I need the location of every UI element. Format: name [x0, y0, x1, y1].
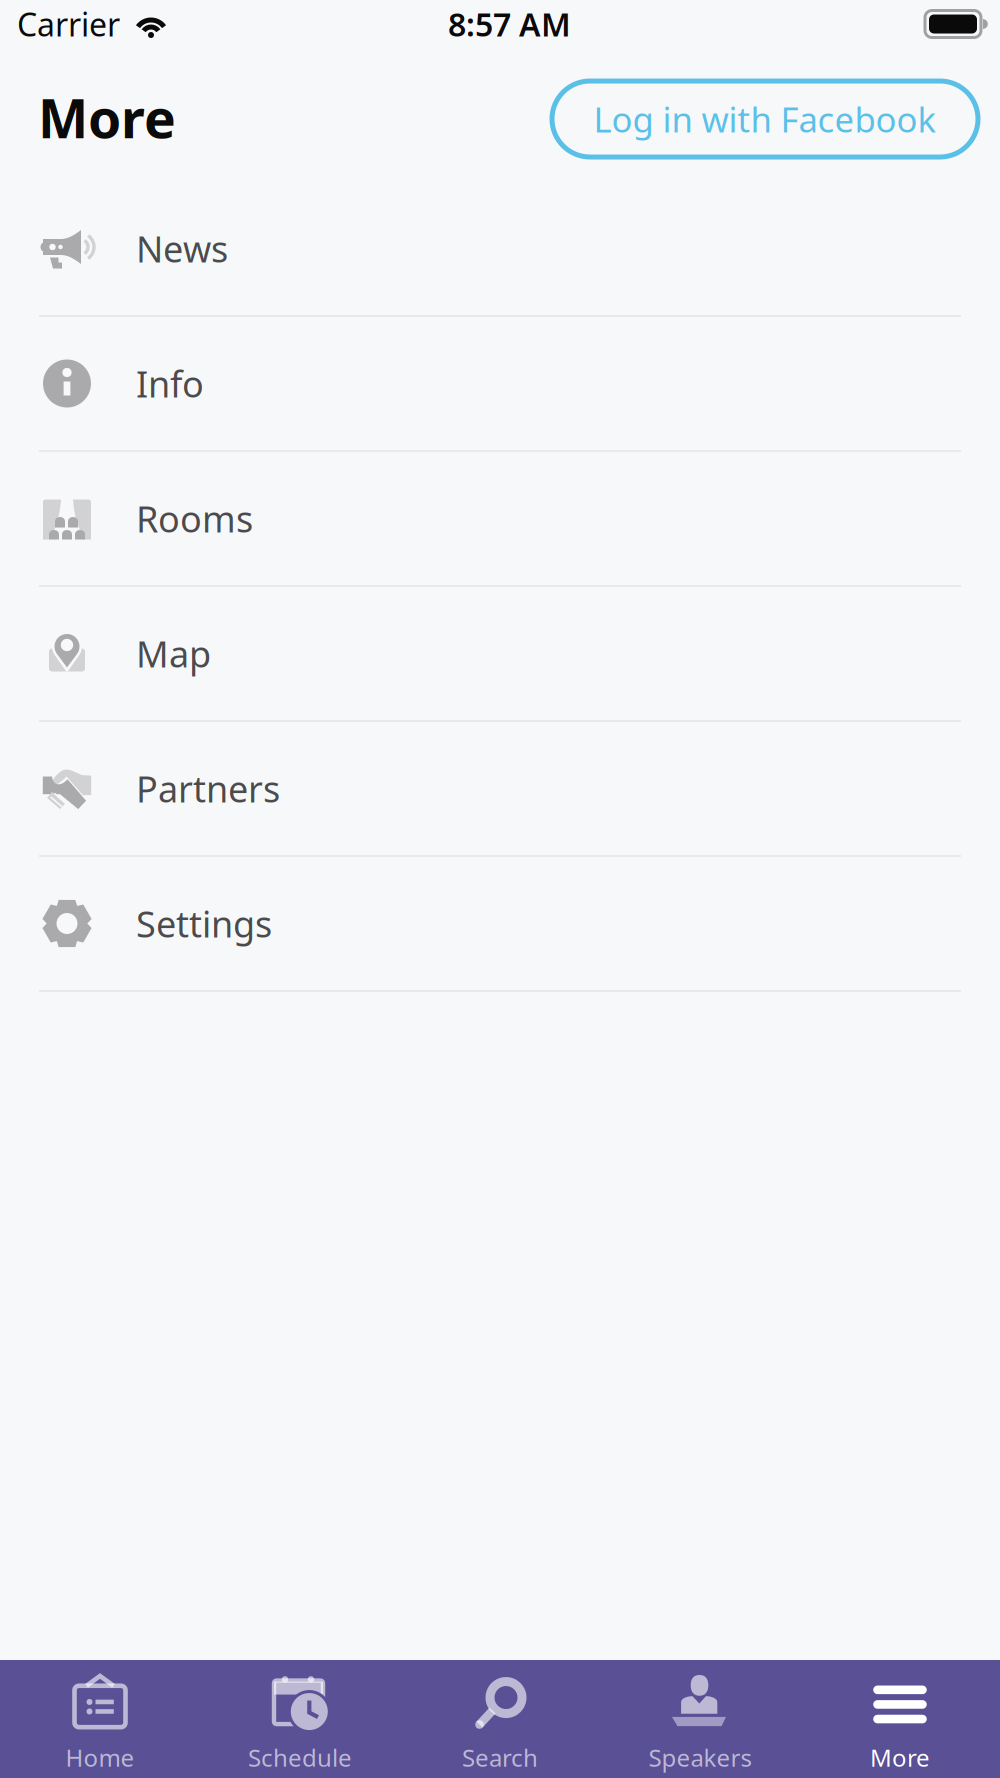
staticText: Speakers — [648, 1742, 751, 1773]
staticText: More — [870, 1742, 930, 1773]
button[interactable]: Schedule — [200, 1656, 400, 1778]
button[interactable]: Search — [400, 1656, 600, 1778]
staticText: Rooms — [136, 495, 253, 542]
staticText: Search — [462, 1742, 538, 1773]
button[interactable]: Partners — [0, 722, 1000, 857]
button[interactable]: Speakers — [600, 1656, 800, 1778]
staticText: Carrier — [17, 3, 120, 45]
button[interactable]: Settings — [0, 857, 1000, 992]
button[interactable]: Log in with Facebook — [552, 73, 978, 157]
button[interactable]: Rooms — [0, 452, 1000, 587]
staticText: 8:57 AM — [448, 3, 571, 45]
button[interactable]: More — [800, 1656, 1000, 1778]
button[interactable]: Map — [0, 587, 1000, 722]
button[interactable]: Home — [0, 1656, 200, 1778]
staticText: More — [38, 82, 176, 153]
staticText: Log in with Facebook — [593, 96, 936, 142]
staticText: Home — [65, 1742, 134, 1773]
staticText: News — [136, 225, 228, 272]
staticText: Schedule — [248, 1742, 352, 1773]
button[interactable]: Info — [0, 317, 1000, 452]
button[interactable]: News — [0, 182, 1000, 317]
staticText: Partners — [136, 765, 280, 812]
staticText: Map — [136, 630, 211, 677]
staticText: Info — [136, 360, 204, 407]
staticText: Settings — [136, 900, 272, 947]
